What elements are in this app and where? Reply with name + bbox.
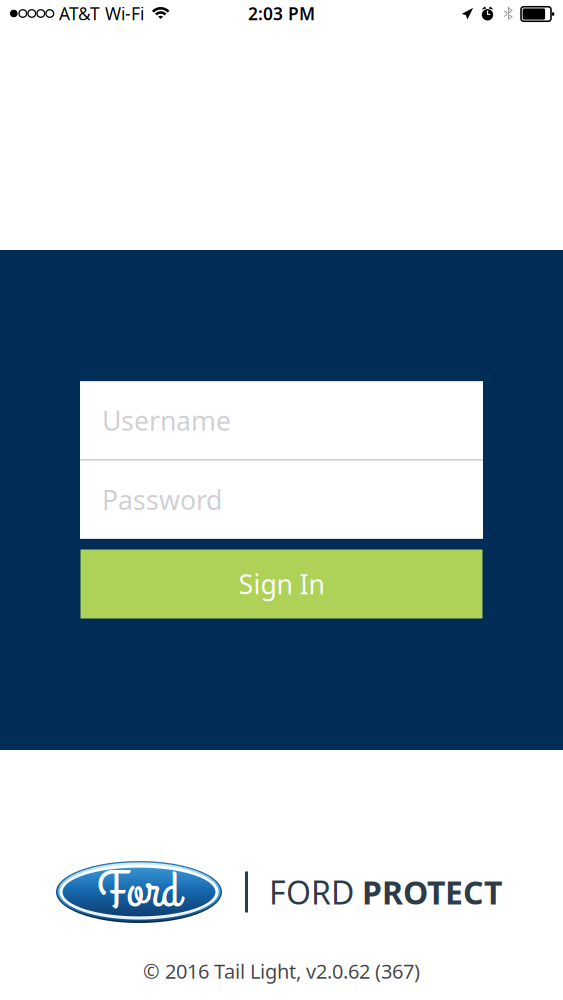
staticText: Sign In xyxy=(238,566,324,602)
button[interactable]: Username xyxy=(80,381,483,459)
staticText: Username xyxy=(102,403,231,438)
button[interactable]: Password xyxy=(80,461,483,539)
staticText: © 2016 Tail Light, v2.0.62 (367) xyxy=(143,958,420,984)
staticText: FORD xyxy=(269,871,354,913)
staticText: PROTECT xyxy=(354,871,502,913)
staticText: Password xyxy=(102,482,222,517)
staticText: AT&T Wi-Fi xyxy=(59,2,144,25)
button[interactable]: Sign In xyxy=(80,549,482,618)
staticText: Ford xyxy=(97,858,180,926)
staticText: 2:03 PM xyxy=(248,2,315,25)
